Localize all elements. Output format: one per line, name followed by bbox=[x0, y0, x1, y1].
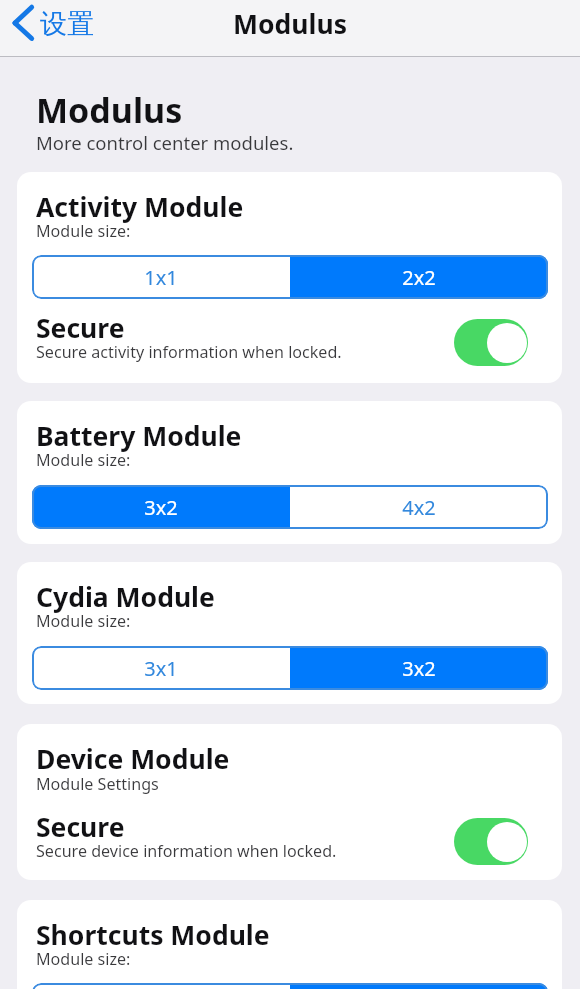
staticText: 1x1 bbox=[144, 264, 178, 291]
button[interactable]: 2x2 bbox=[290, 255, 548, 299]
staticText: Module size: bbox=[36, 449, 131, 471]
staticText: Device Module bbox=[36, 741, 230, 777]
staticText: Shortcuts Module bbox=[36, 917, 270, 953]
staticText: Modulus bbox=[233, 6, 347, 42]
staticText: 2x2 bbox=[402, 264, 436, 291]
button[interactable]: Secure, on bbox=[454, 319, 528, 366]
staticText: More control center modules. bbox=[36, 130, 294, 155]
button[interactable]: 4x2 bbox=[290, 485, 548, 529]
staticText: Secure bbox=[36, 809, 125, 845]
staticText: Module size: bbox=[36, 220, 131, 242]
staticText: 3x2 bbox=[402, 655, 436, 682]
staticText: Module Settings bbox=[36, 773, 159, 795]
button[interactable]: 2x2 bbox=[290, 983, 548, 989]
staticText: Battery Module bbox=[36, 418, 242, 454]
staticText: Modulus bbox=[36, 87, 183, 133]
button[interactable]: Secure bbox=[17, 306, 562, 368]
staticText: Activity Module bbox=[36, 189, 244, 225]
staticText: Cydia Module bbox=[36, 579, 215, 615]
staticText: 3x1 bbox=[144, 655, 178, 682]
staticText: 4x2 bbox=[402, 494, 436, 521]
button[interactable]: Back to Settings bbox=[0, 0, 110, 57]
staticText: 设置 bbox=[40, 7, 94, 41]
button[interactable]: 2x1 bbox=[32, 983, 290, 989]
staticText: 3x2 bbox=[144, 494, 178, 521]
button[interactable]: Secure bbox=[17, 805, 562, 867]
staticText: Secure activity information when locked. bbox=[36, 341, 342, 363]
button[interactable]: 3x1 bbox=[32, 646, 290, 690]
staticText: Module size: bbox=[36, 610, 131, 632]
staticText: Module size: bbox=[36, 948, 131, 970]
staticText: Secure device information when locked. bbox=[36, 840, 337, 862]
button[interactable]: Secure, on bbox=[454, 818, 528, 865]
button[interactable]: 3x2 bbox=[290, 646, 548, 690]
button[interactable]: 1x1 bbox=[32, 255, 290, 299]
button[interactable]: 3x2 bbox=[32, 485, 290, 529]
staticText: Secure bbox=[36, 310, 125, 346]
